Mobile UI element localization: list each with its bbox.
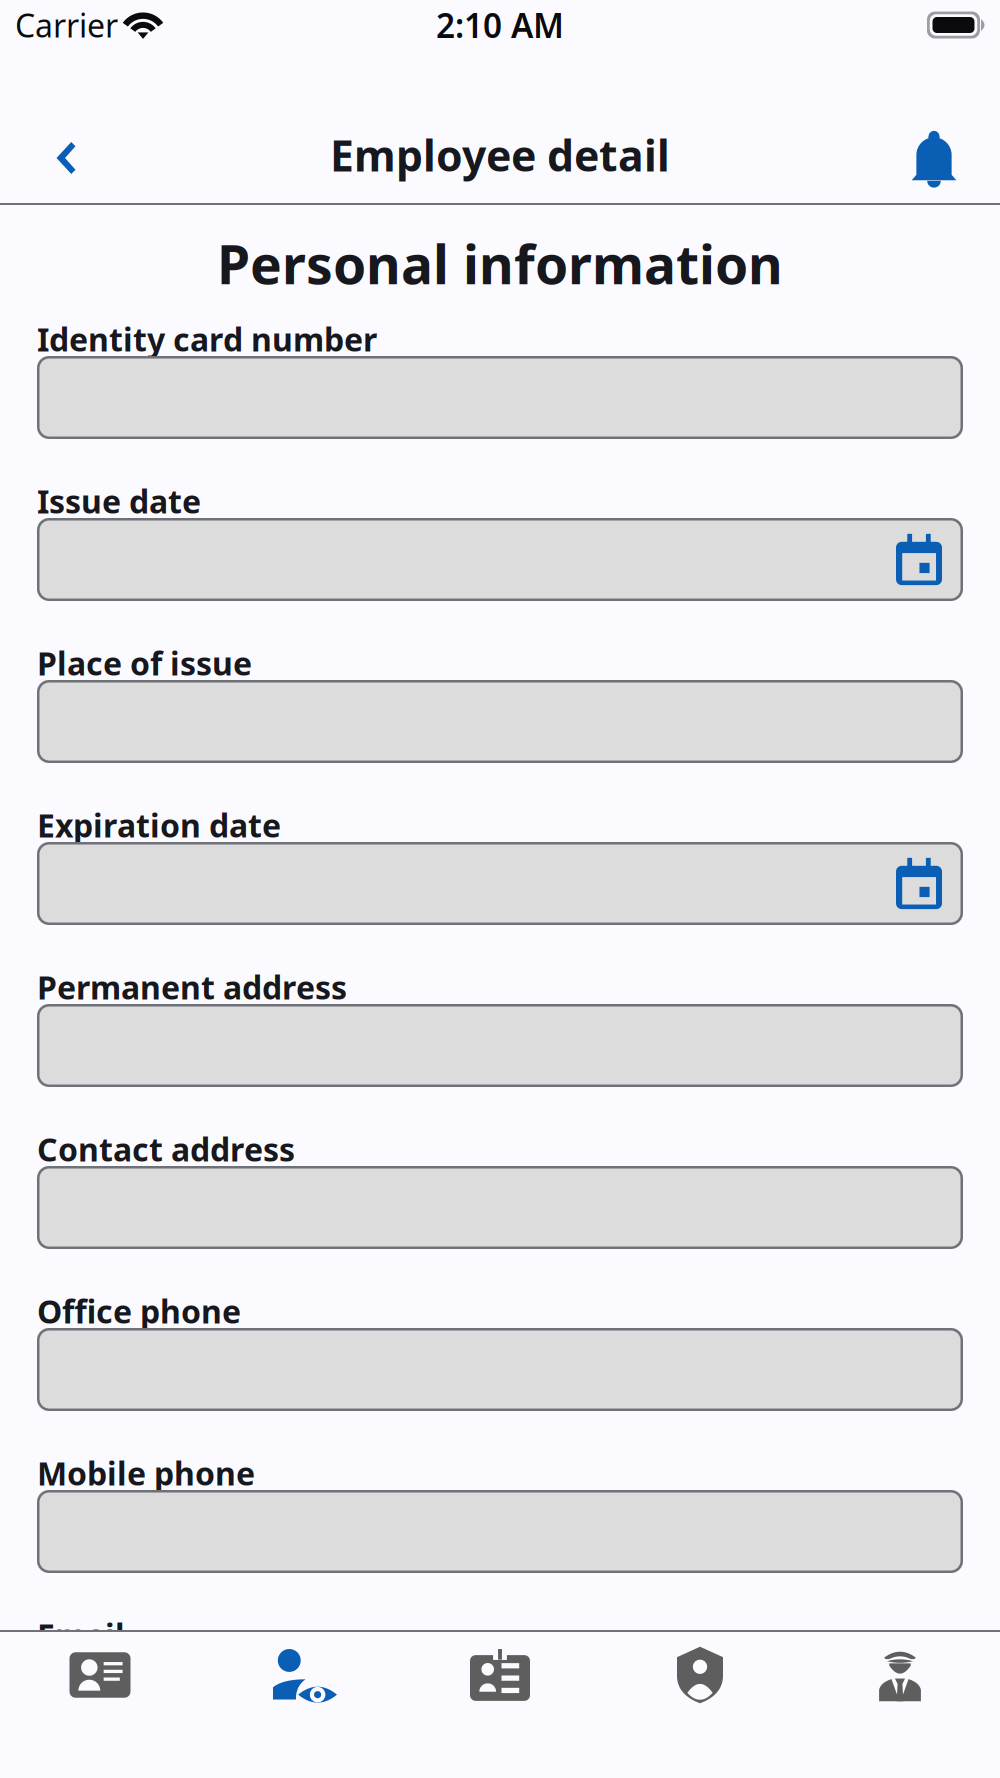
button[interactable]: Expiration date (37, 842, 963, 925)
button[interactable]: Issue date (37, 518, 963, 601)
button[interactable]: Office phone (37, 1328, 963, 1411)
button[interactable]: Place of issue (37, 680, 963, 763)
staticText: Identity card number (37, 318, 377, 360)
staticText: Email (37, 1614, 125, 1656)
button[interactable]: Contact address (37, 1166, 963, 1249)
button[interactable]: Back (18, 107, 114, 203)
button[interactable]: Permanent address (37, 1004, 963, 1087)
button[interactable]: Notifications (886, 107, 982, 203)
button[interactable]: Employee card (400, 1632, 600, 1718)
staticText: 2:10 AM (436, 3, 564, 47)
staticText: Contact address (37, 1128, 295, 1170)
button[interactable]: Mobile phone (37, 1490, 963, 1573)
staticText: Expiration date (37, 804, 281, 846)
staticText: Personal information (217, 228, 783, 299)
staticText: Office phone (37, 1290, 241, 1332)
button[interactable]: Security (600, 1632, 800, 1718)
staticText: Carrier (15, 4, 118, 46)
button[interactable]: Officer (800, 1632, 1000, 1718)
button[interactable]: Employees (0, 1632, 200, 1718)
staticText: Permanent address (37, 966, 347, 1008)
staticText: Issue date (37, 480, 201, 522)
staticText: Place of issue (37, 642, 252, 684)
staticText: Employee detail (330, 127, 670, 183)
button[interactable]: Employee detail (200, 1632, 400, 1718)
staticText: Mobile phone (37, 1452, 255, 1494)
button[interactable]: Identity card number (37, 356, 963, 439)
